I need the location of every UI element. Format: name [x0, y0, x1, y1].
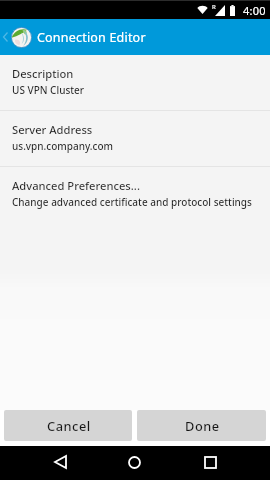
button[interactable]: Back: [46, 446, 74, 478]
staticText: Connection Editor: [37, 29, 146, 46]
staticText: Done: [185, 417, 220, 434]
staticText: R: [212, 3, 216, 11]
button[interactable]: Server Address: [0, 111, 270, 166]
staticText: US VPN Cluster: [12, 83, 85, 97]
button[interactable]: Advanced Preferences...: [0, 167, 270, 222]
button[interactable]: Recent apps: [196, 446, 224, 478]
button[interactable]: Home: [120, 446, 148, 478]
staticText: Cancel: [47, 417, 91, 434]
button[interactable]: Navigate up: [0, 19, 11, 55]
staticText: Server Address: [12, 122, 93, 137]
staticText: Advanced Preferences...: [12, 178, 140, 193]
button[interactable]: Description: [0, 55, 270, 110]
staticText: 4:00: [243, 3, 266, 18]
staticText: Description: [12, 66, 74, 81]
staticText: Change advanced certificate and protocol…: [12, 195, 252, 209]
staticText: us.vpn.company.com: [12, 139, 114, 153]
button[interactable]: Cancel: [4, 410, 132, 441]
button[interactable]: Done: [137, 410, 266, 441]
